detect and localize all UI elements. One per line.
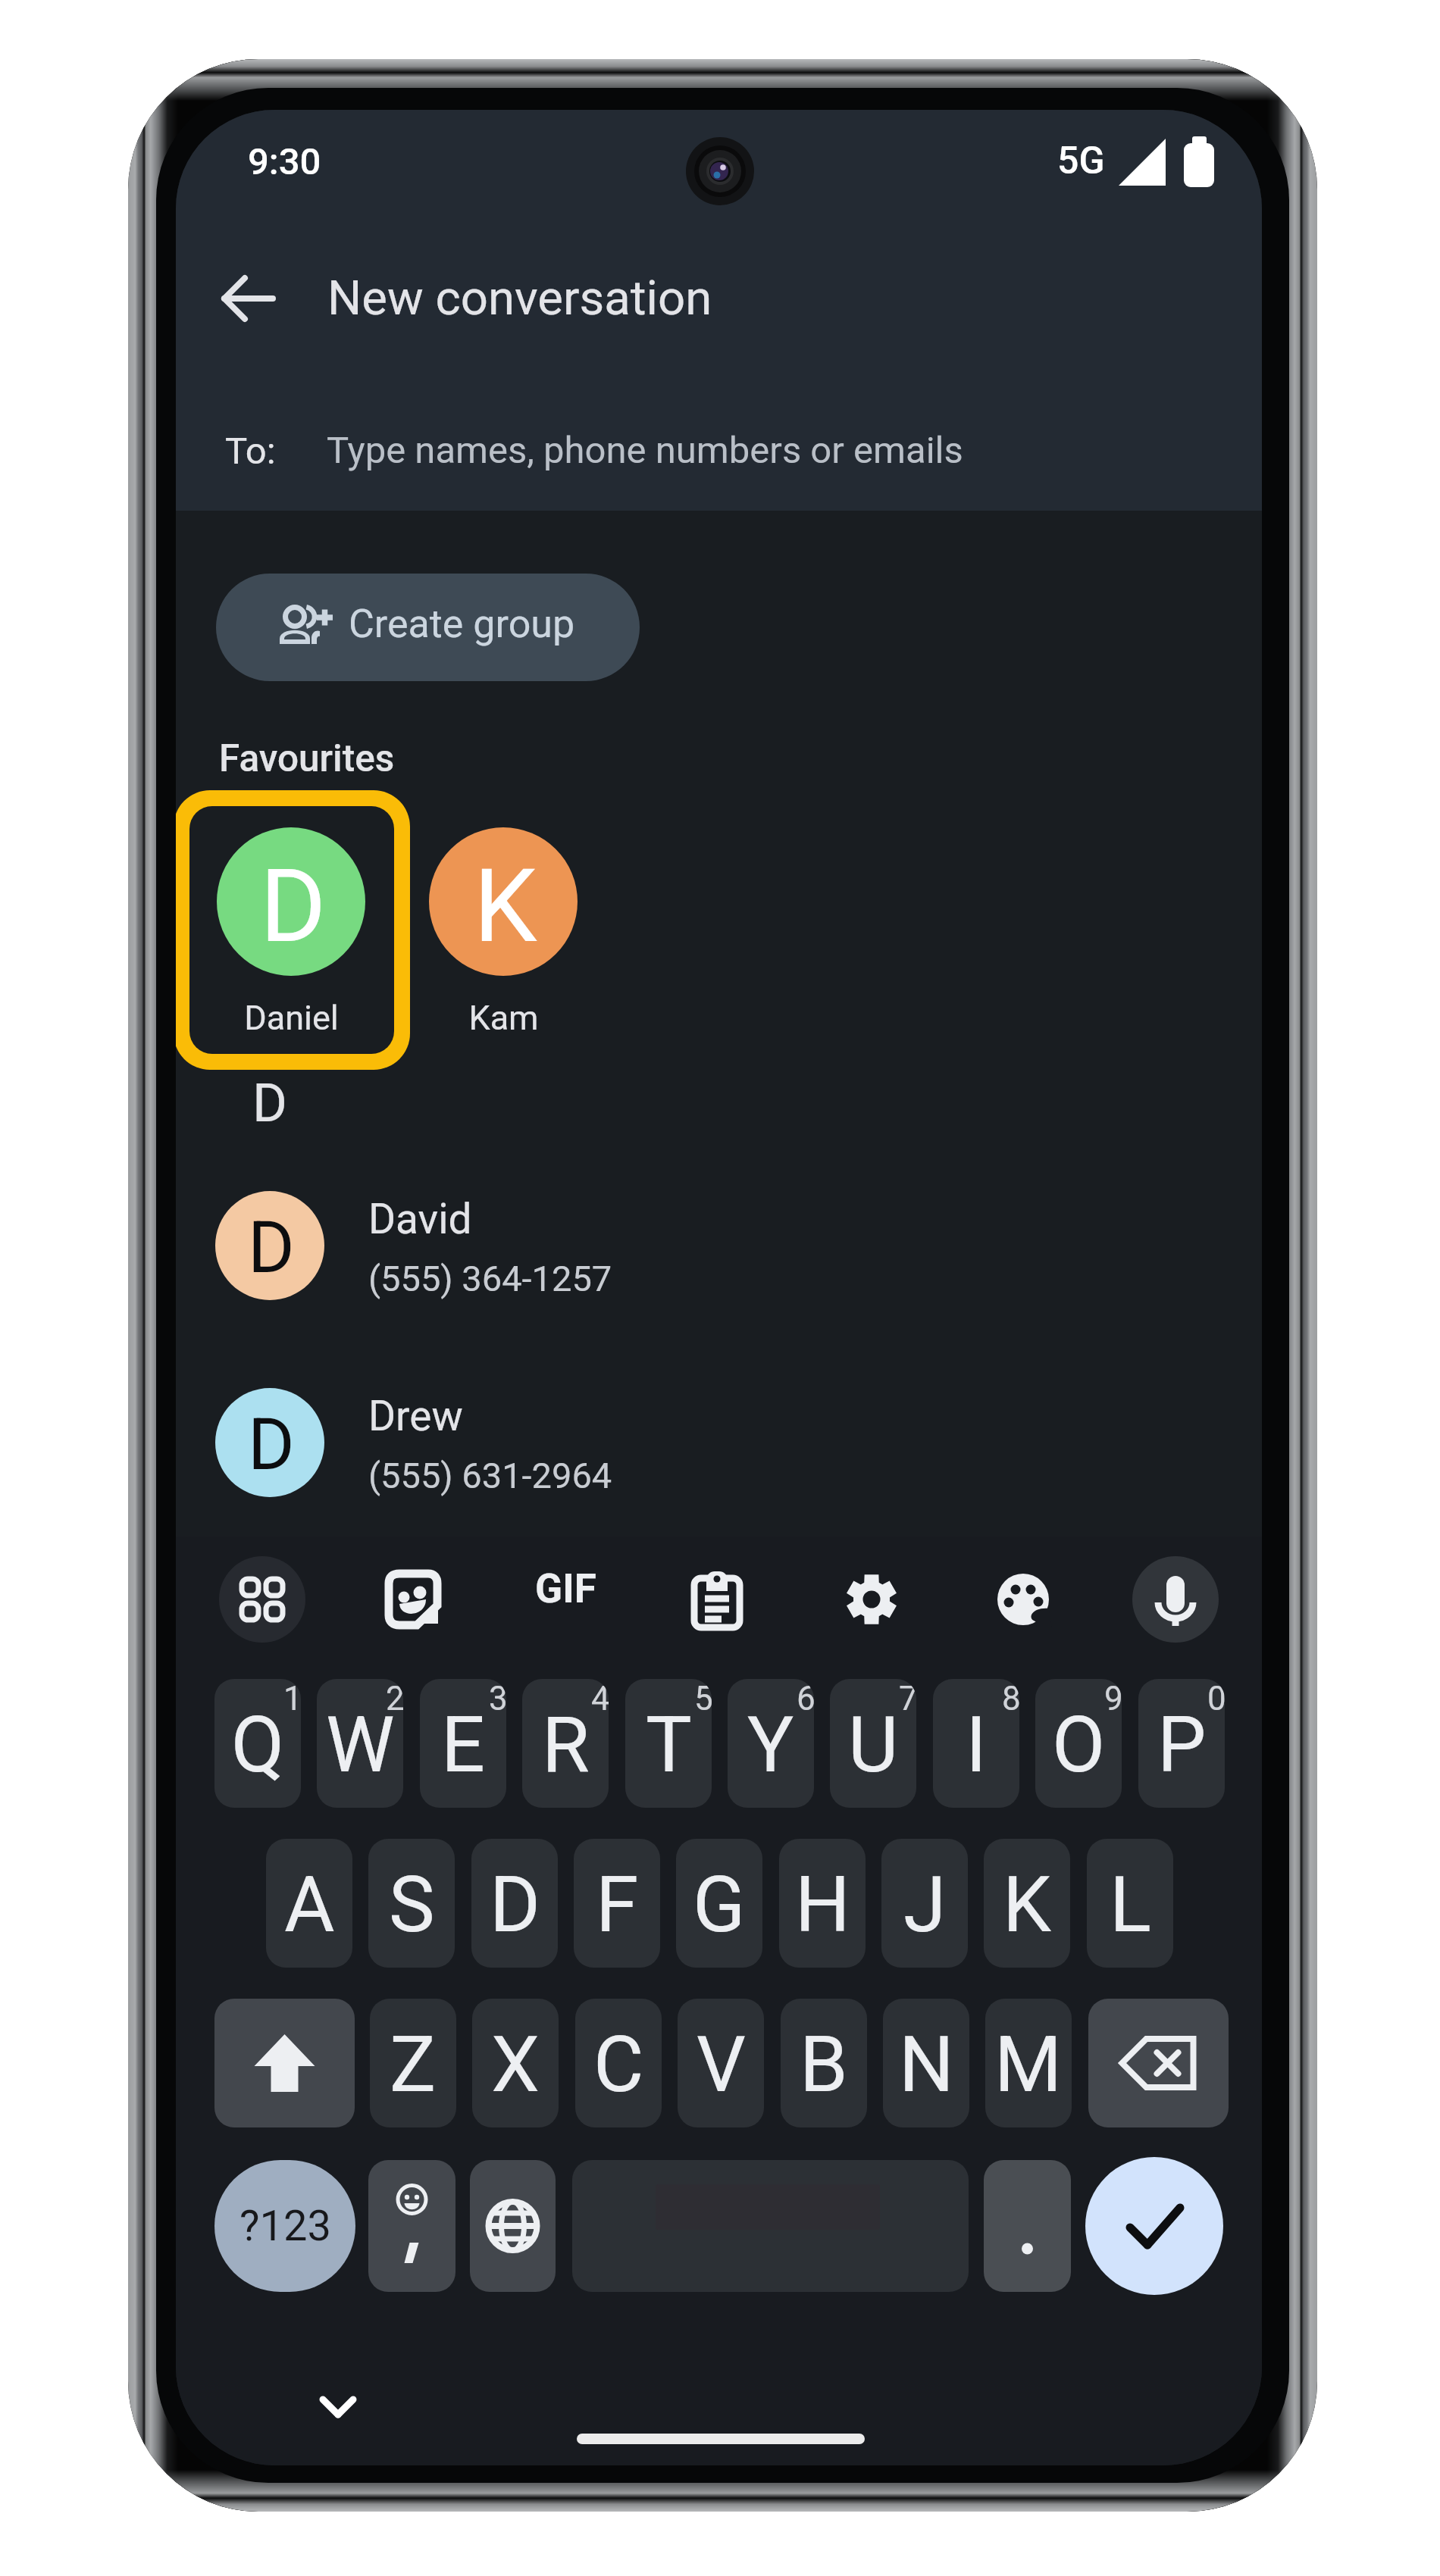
button[interactable]: Done [1085, 2157, 1223, 2295]
button[interactable]: D [176, 1136, 1262, 1333]
button[interactable]: Y [728, 1679, 814, 1808]
staticText: D [252, 1072, 287, 1134]
staticText: Q [231, 1699, 285, 1790]
staticText: D [248, 1403, 295, 1487]
button[interactable]: N [883, 1999, 969, 2127]
button[interactable]: M [985, 1999, 1072, 2127]
staticText: V [697, 2019, 746, 2110]
button[interactable]: D [208, 818, 374, 1046]
button[interactable]: F [574, 1839, 660, 1968]
button[interactable]: Backspace [1088, 1999, 1229, 2127]
staticText: K [474, 848, 537, 966]
staticText: O [1052, 1699, 1106, 1790]
staticText: 8 [1002, 1679, 1019, 1718]
button[interactable]: O [1035, 1679, 1122, 1808]
button[interactable]: R [522, 1679, 609, 1808]
button[interactable]: T [625, 1679, 712, 1808]
staticText: W [326, 1699, 395, 1790]
button[interactable]: G [676, 1839, 762, 1968]
staticText: P [1157, 1699, 1207, 1790]
button[interactable]: A [266, 1839, 352, 1968]
button[interactable]: Z [370, 1999, 456, 2127]
button[interactable]: X [472, 1999, 559, 2127]
button[interactable]: Q [214, 1679, 301, 1808]
staticText: F [596, 1859, 639, 1950]
staticText: To: [225, 430, 276, 473]
staticText: (555) 631-2964 [368, 1455, 612, 1496]
button[interactable]: J [881, 1839, 968, 1968]
button[interactable]: Apps [219, 1556, 305, 1643]
staticText: B [800, 2019, 848, 2110]
staticText: E [441, 1699, 485, 1790]
staticText: 3 [489, 1679, 506, 1718]
button[interactable]: Hide keyboard [320, 2389, 356, 2425]
button[interactable]: W [317, 1679, 403, 1808]
button[interactable]: ?123 [214, 2160, 355, 2292]
staticText: 5G [1057, 139, 1105, 183]
button[interactable]: B [781, 1999, 867, 2127]
button[interactable]: E [420, 1679, 506, 1808]
staticText: Type names, phone numbers or emails [327, 429, 963, 472]
button[interactable]: Voice input [1132, 1556, 1219, 1643]
button[interactable]: Emoji [368, 2160, 455, 2292]
staticText: M [994, 2019, 1063, 2110]
button[interactable]: Create group [216, 574, 640, 681]
staticText: 5 [694, 1679, 712, 1718]
button[interactable]: Change language [470, 2160, 556, 2292]
button[interactable]: I [933, 1679, 1019, 1808]
staticText: J [903, 1859, 947, 1950]
button[interactable]: Back [205, 255, 293, 342]
staticText: 6 [797, 1679, 814, 1718]
staticText: U [848, 1699, 899, 1790]
staticText: 7 [899, 1679, 916, 1718]
staticText: T [646, 1699, 692, 1790]
button[interactable]: C [575, 1999, 662, 2127]
button[interactable]: V [678, 1999, 764, 2127]
button[interactable]: D [176, 1333, 1262, 1530]
staticText: A [284, 1859, 335, 1950]
button[interactable]: K [420, 818, 587, 1046]
button[interactable]: Shift [214, 1999, 355, 2127]
staticText: Favourites [219, 736, 395, 780]
button[interactable]: Theme [997, 1574, 1050, 1627]
staticText: 4 [591, 1679, 609, 1718]
button[interactable]: Settings [846, 1574, 897, 1625]
staticText: Z [390, 2019, 437, 2110]
staticText: N [899, 2019, 954, 2110]
staticText: 9:30 [248, 140, 321, 183]
staticText: D [490, 1859, 540, 1950]
staticText: David [368, 1195, 472, 1243]
staticText: C [593, 2019, 644, 2110]
staticText: New conversation [327, 270, 712, 326]
button[interactable]: L [1087, 1839, 1173, 1968]
staticText: S [389, 1859, 435, 1950]
staticText: G [693, 1859, 746, 1950]
staticText: Y [747, 1699, 794, 1790]
staticText: 0 [1207, 1679, 1225, 1718]
staticText: (555) 364-1257 [368, 1258, 612, 1299]
button[interactable]: P [1138, 1679, 1225, 1808]
button[interactable]: Period [984, 2160, 1071, 2292]
staticText: X [491, 2019, 540, 2110]
button[interactable]: Stickers [384, 1570, 443, 1629]
staticText: Drew [368, 1392, 463, 1440]
staticText: I [966, 1699, 987, 1790]
staticText: Create group [349, 601, 575, 647]
button[interactable]: S [368, 1839, 455, 1968]
staticText: Daniel [244, 998, 339, 1038]
staticText: 2 [386, 1679, 403, 1718]
staticText: H [795, 1859, 850, 1950]
staticText: ?123 [239, 2201, 331, 2251]
button[interactable]: K [984, 1839, 1070, 1968]
button[interactable]: U [830, 1679, 916, 1808]
button[interactable]: D [471, 1839, 558, 1968]
staticText: D [260, 848, 327, 966]
button[interactable]: Clipboard [693, 1571, 741, 1629]
staticText: Kam [468, 998, 539, 1038]
staticText: D [248, 1206, 295, 1290]
button[interactable]: H [779, 1839, 866, 1968]
staticText: GIF [535, 1565, 596, 1612]
staticText: L [1110, 1859, 1151, 1950]
staticText: K [1003, 1859, 1051, 1950]
